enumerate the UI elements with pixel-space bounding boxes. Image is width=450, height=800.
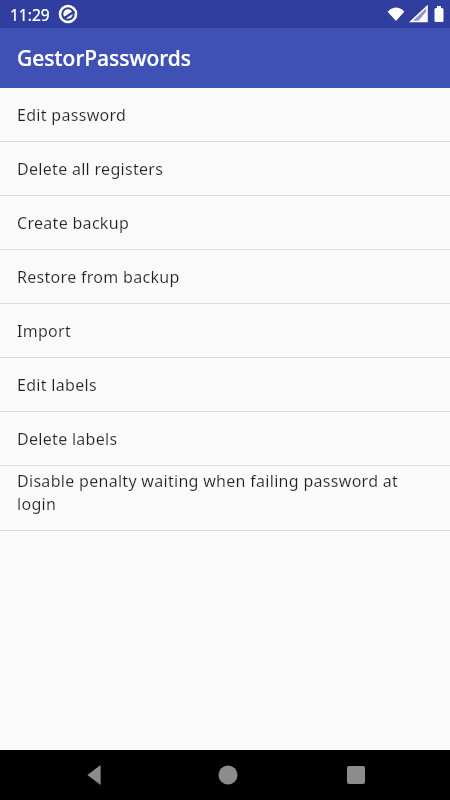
button[interactable]: Create backup bbox=[0, 196, 450, 249]
button[interactable]: Delete all registers bbox=[0, 142, 450, 195]
button[interactable] bbox=[70, 750, 120, 800]
staticText: Edit labels bbox=[17, 374, 97, 396]
button[interactable]: Delete labels bbox=[0, 412, 450, 465]
staticText: Create backup bbox=[17, 212, 130, 234]
button[interactable]: Import bbox=[0, 304, 450, 357]
button[interactable]: Restore from backup bbox=[0, 250, 450, 303]
staticText: Import bbox=[17, 320, 72, 342]
button[interactable]: Edit labels bbox=[0, 358, 450, 411]
staticText: Restore from backup bbox=[17, 266, 180, 288]
staticText: 11:29 bbox=[10, 4, 50, 25]
staticText: Disable penalty waiting when failing pas… bbox=[17, 470, 399, 515]
staticText: GestorPasswords bbox=[17, 44, 191, 73]
staticText: Edit password bbox=[17, 104, 127, 126]
button[interactable]: Edit password bbox=[0, 88, 450, 141]
staticText: Delete labels bbox=[17, 428, 118, 450]
button[interactable] bbox=[203, 750, 253, 800]
button[interactable] bbox=[331, 750, 381, 800]
staticText: Delete all registers bbox=[17, 158, 164, 180]
button[interactable]: Disable penalty waiting when failing pas… bbox=[0, 466, 450, 530]
